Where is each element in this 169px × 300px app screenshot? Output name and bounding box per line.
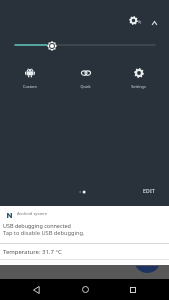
staticText: Temperature: 31.7 °C [3, 248, 62, 256]
button[interactable]: Home [72, 279, 98, 300]
button[interactable]: Custom [6, 64, 54, 94]
staticText: Custom [23, 84, 37, 89]
button[interactable]: Temperature: 31.7 °C [0, 244, 169, 265]
button[interactable]: Android system [0, 206, 169, 243]
staticText: USB debugging connected [3, 222, 71, 229]
button[interactable]: Recents [120, 279, 146, 300]
button[interactable]: EDIT [140, 186, 159, 197]
button[interactable]: Settings [114, 64, 162, 94]
staticText: Tap to disable USB debugging. [3, 229, 85, 237]
button[interactable]: Settings [125, 12, 142, 29]
staticText: Android system [17, 211, 48, 217]
staticText: EDIT [143, 188, 156, 195]
button[interactable]: Back [23, 279, 49, 300]
button[interactable]: Quick [61, 64, 109, 94]
staticText: Settings [131, 84, 146, 89]
staticText: Quick [80, 84, 91, 89]
button[interactable]: Collapse [146, 14, 163, 31]
button[interactable]: Brightness [0, 38, 169, 52]
